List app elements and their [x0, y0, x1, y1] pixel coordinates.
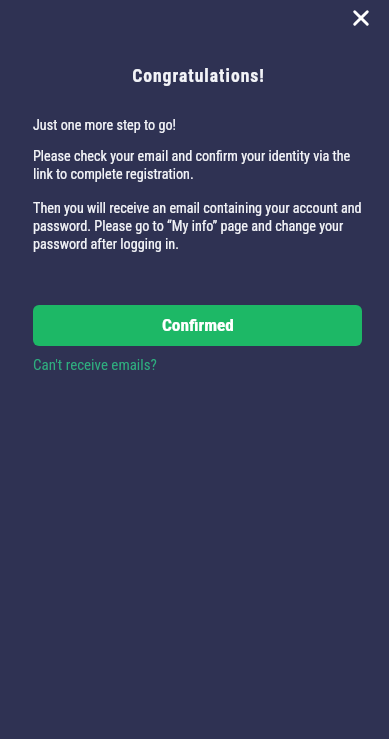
staticText: Can't receive emails? — [33, 356, 157, 374]
staticText: Confirmed — [162, 315, 234, 335]
button[interactable]: Confirmed — [33, 305, 362, 346]
staticText: Please check your email and confirm your… — [33, 148, 364, 183]
staticText: Congratulations! — [4, 66, 389, 87]
staticText: Just one more step to go! — [33, 117, 177, 134]
staticText: Then you will receive an email containin… — [33, 200, 364, 253]
button[interactable]: Close — [345, 2, 377, 34]
button[interactable]: Can't receive emails? — [33, 356, 157, 374]
